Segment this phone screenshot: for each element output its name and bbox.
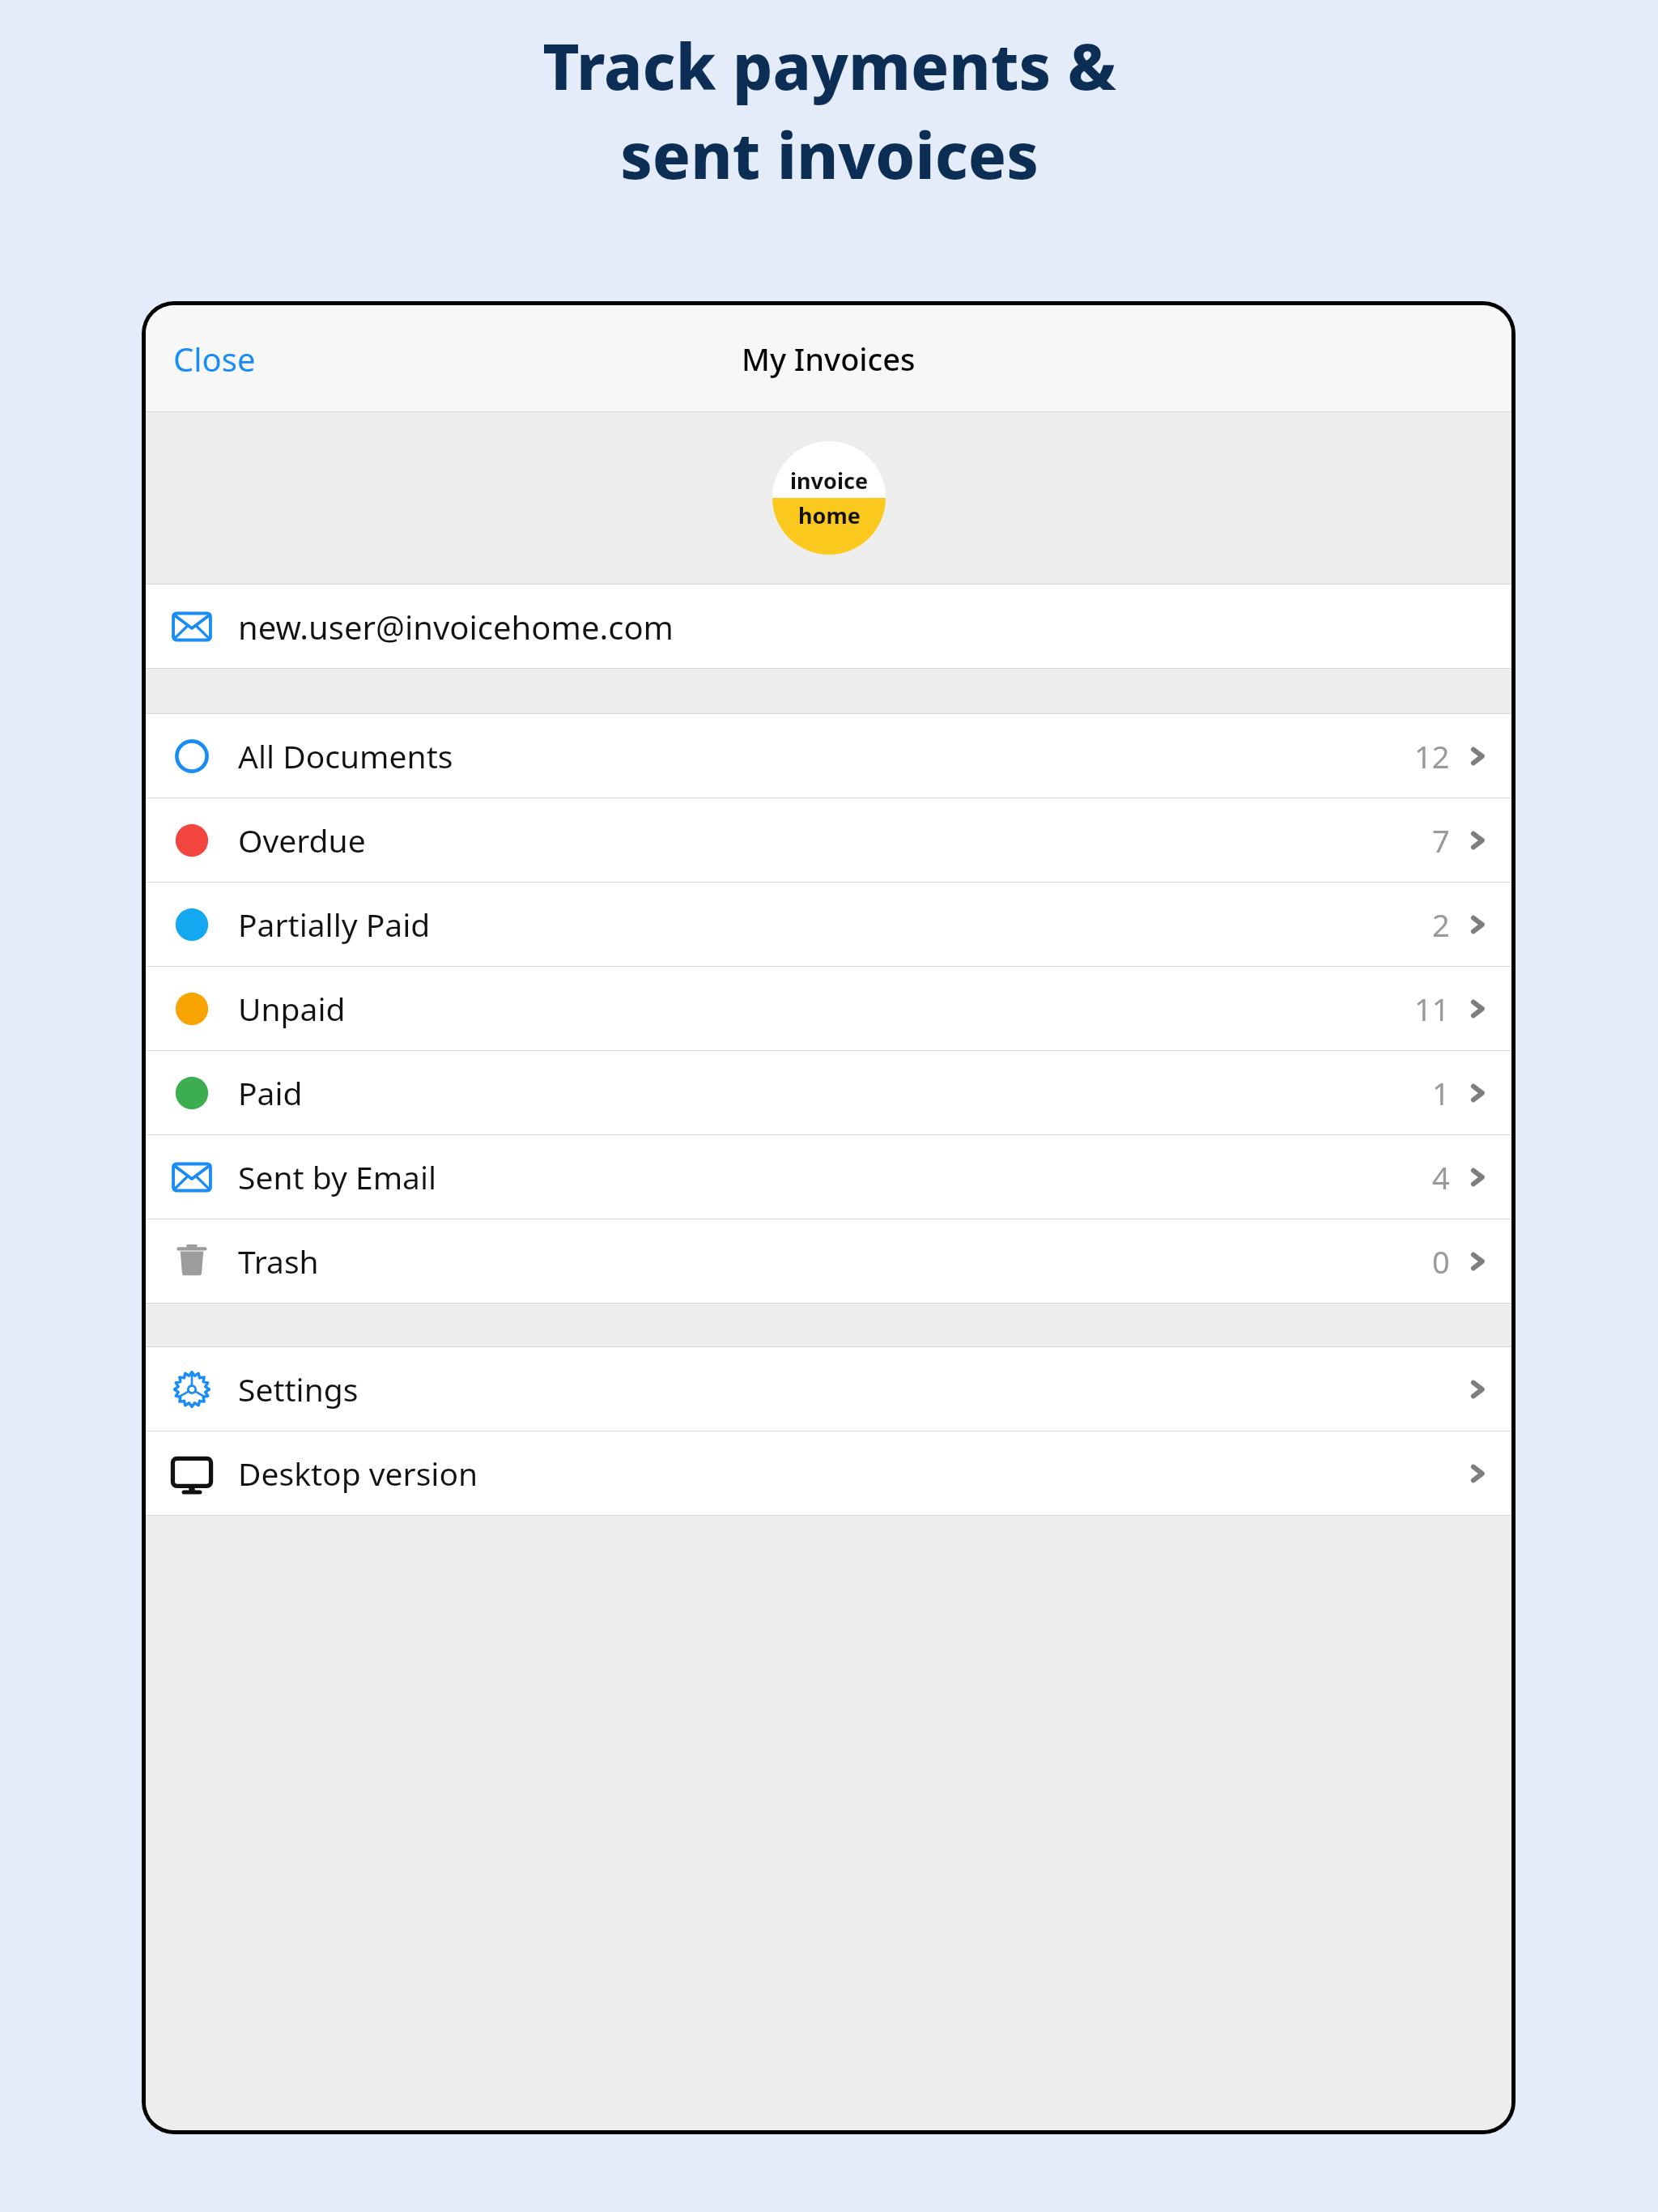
staticText: Trash	[238, 1240, 319, 1283]
staticText: Settings	[238, 1368, 359, 1410]
staticText: Unpaid	[238, 987, 346, 1030]
button[interactable]: Trash	[146, 1219, 1511, 1303]
staticText: Paid	[238, 1071, 303, 1114]
staticText: 11	[1414, 988, 1450, 1030]
staticText: Partially Paid	[238, 903, 431, 946]
button[interactable]: All Documents	[146, 714, 1511, 798]
staticText: 12	[1414, 735, 1450, 777]
staticText: 1	[1432, 1072, 1450, 1114]
staticText: 2	[1432, 904, 1450, 946]
button[interactable]: Settings	[146, 1347, 1511, 1431]
button[interactable]: Close	[162, 325, 267, 392]
staticText: invoice	[790, 466, 869, 496]
staticText: Track payments &	[542, 23, 1116, 108]
staticText: Sent by Email	[238, 1155, 437, 1198]
staticText: Close	[173, 337, 256, 381]
staticText: sent invoices	[620, 112, 1039, 198]
button[interactable]: Desktop version	[146, 1431, 1511, 1515]
staticText: 7	[1432, 819, 1450, 861]
staticText: My Invoices	[742, 338, 916, 380]
staticText: 0	[1432, 1240, 1450, 1283]
button[interactable]: Sent by Email	[146, 1135, 1511, 1219]
button[interactable]: Unpaid	[146, 967, 1511, 1050]
staticText: Overdue	[238, 819, 366, 861]
button[interactable]: Overdue	[146, 798, 1511, 882]
staticText: new.user@invoicehome.com	[238, 605, 674, 649]
staticText: Desktop version	[238, 1452, 478, 1495]
staticText: home	[798, 500, 861, 530]
staticText: 4	[1432, 1156, 1450, 1198]
staticText: All Documents	[238, 734, 453, 777]
button[interactable]: Partially Paid	[146, 883, 1511, 966]
button[interactable]: new.user@invoicehome.com	[146, 585, 1511, 668]
button[interactable]: Paid	[146, 1051, 1511, 1134]
